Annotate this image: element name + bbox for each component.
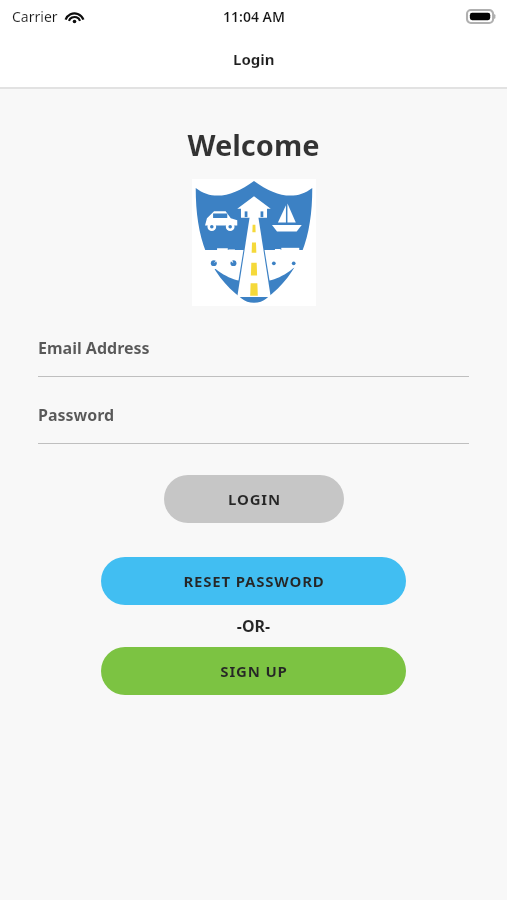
staticText: Login [233, 49, 275, 69]
button[interactable]: Password [0, 404, 507, 444]
staticText: LOGIN [228, 489, 281, 509]
staticText: Welcome [0, 125, 507, 164]
staticText: Password [38, 404, 115, 426]
other: App logo [192, 179, 316, 306]
staticText: -OR- [0, 615, 507, 637]
staticText: RESET PASSWORD [183, 571, 325, 591]
button[interactable]: LOGIN [164, 475, 344, 523]
button[interactable]: RESET PASSWORD [101, 557, 406, 605]
button[interactable]: Email Address [0, 337, 507, 377]
staticText: 11:04 AM [223, 7, 285, 26]
staticText: SIGN UP [220, 661, 288, 681]
staticText: Email Address [38, 337, 150, 359]
staticText: Carrier [12, 7, 58, 26]
button[interactable]: SIGN UP [101, 647, 406, 695]
